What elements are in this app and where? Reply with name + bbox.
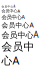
staticText: 会员中心A (1, 5, 15, 8)
staticText: 会员中心A (1, 13, 24, 21)
staticText: 会员中心A (1, 29, 38, 40)
staticText: 会员中心A (1, 40, 34, 67)
staticText: 会员中心A (1, 21, 33, 29)
staticText: 会员中心A (1, 8, 20, 13)
